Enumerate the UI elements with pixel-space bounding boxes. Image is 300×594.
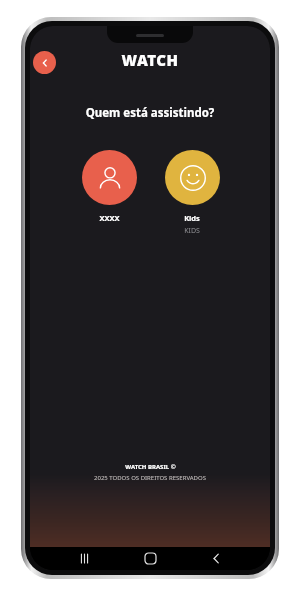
staticText: WATCH BRASIL © — [125, 463, 176, 471]
staticText: Quem está assistindo? — [30, 105, 270, 121]
button[interactable]: Back — [33, 51, 56, 74]
staticText: KIDS — [184, 226, 200, 236]
staticText: 2025 TODOS OS DIREITOS RESERVADOS — [94, 474, 206, 482]
staticText: XXXX — [99, 213, 120, 223]
button[interactable]: WATCH — [121, 50, 179, 70]
button[interactable]: XXXX — [81, 150, 137, 223]
button[interactable]: Home — [138, 547, 162, 570]
button[interactable]: Kids — [164, 150, 220, 236]
button[interactable]: Recent apps — [72, 547, 96, 570]
button[interactable]: Back — [204, 547, 228, 570]
staticText: WATCH — [121, 50, 179, 70]
staticText: Kids — [184, 213, 200, 223]
